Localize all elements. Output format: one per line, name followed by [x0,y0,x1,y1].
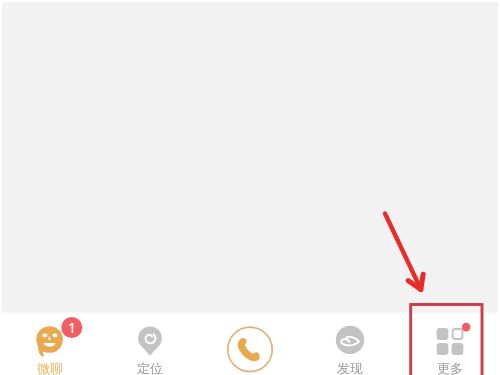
button[interactable]: 更多 [400,313,500,375]
button[interactable]: Call [200,313,300,375]
staticText: 发现 [300,360,400,375]
staticText: 更多 [400,360,500,375]
button[interactable]: 定位 [100,313,200,375]
staticText: 微聊 [0,360,100,375]
staticText: 定位 [100,360,200,375]
button[interactable]: 发现 [300,313,400,375]
button[interactable]: 微聊 [0,313,100,375]
staticText: 1 [68,319,76,337]
